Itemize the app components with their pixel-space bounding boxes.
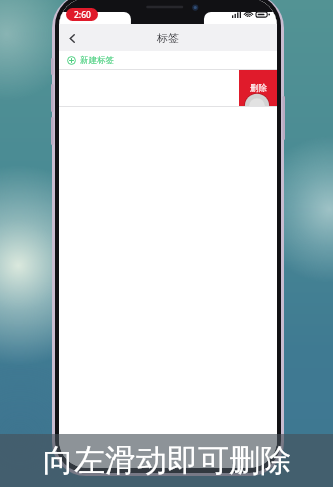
button[interactable]: 新建标签 (59, 51, 277, 69)
staticText: 标签 (157, 31, 179, 45)
staticText: 向左滑动即可删除 (43, 441, 291, 480)
staticText: 2:60 (74, 9, 91, 21)
staticText: 新建标签 (80, 55, 114, 66)
button[interactable]: Back (59, 25, 85, 51)
button[interactable]: 删除 (239, 70, 277, 106)
staticText: 删除 (250, 83, 267, 94)
